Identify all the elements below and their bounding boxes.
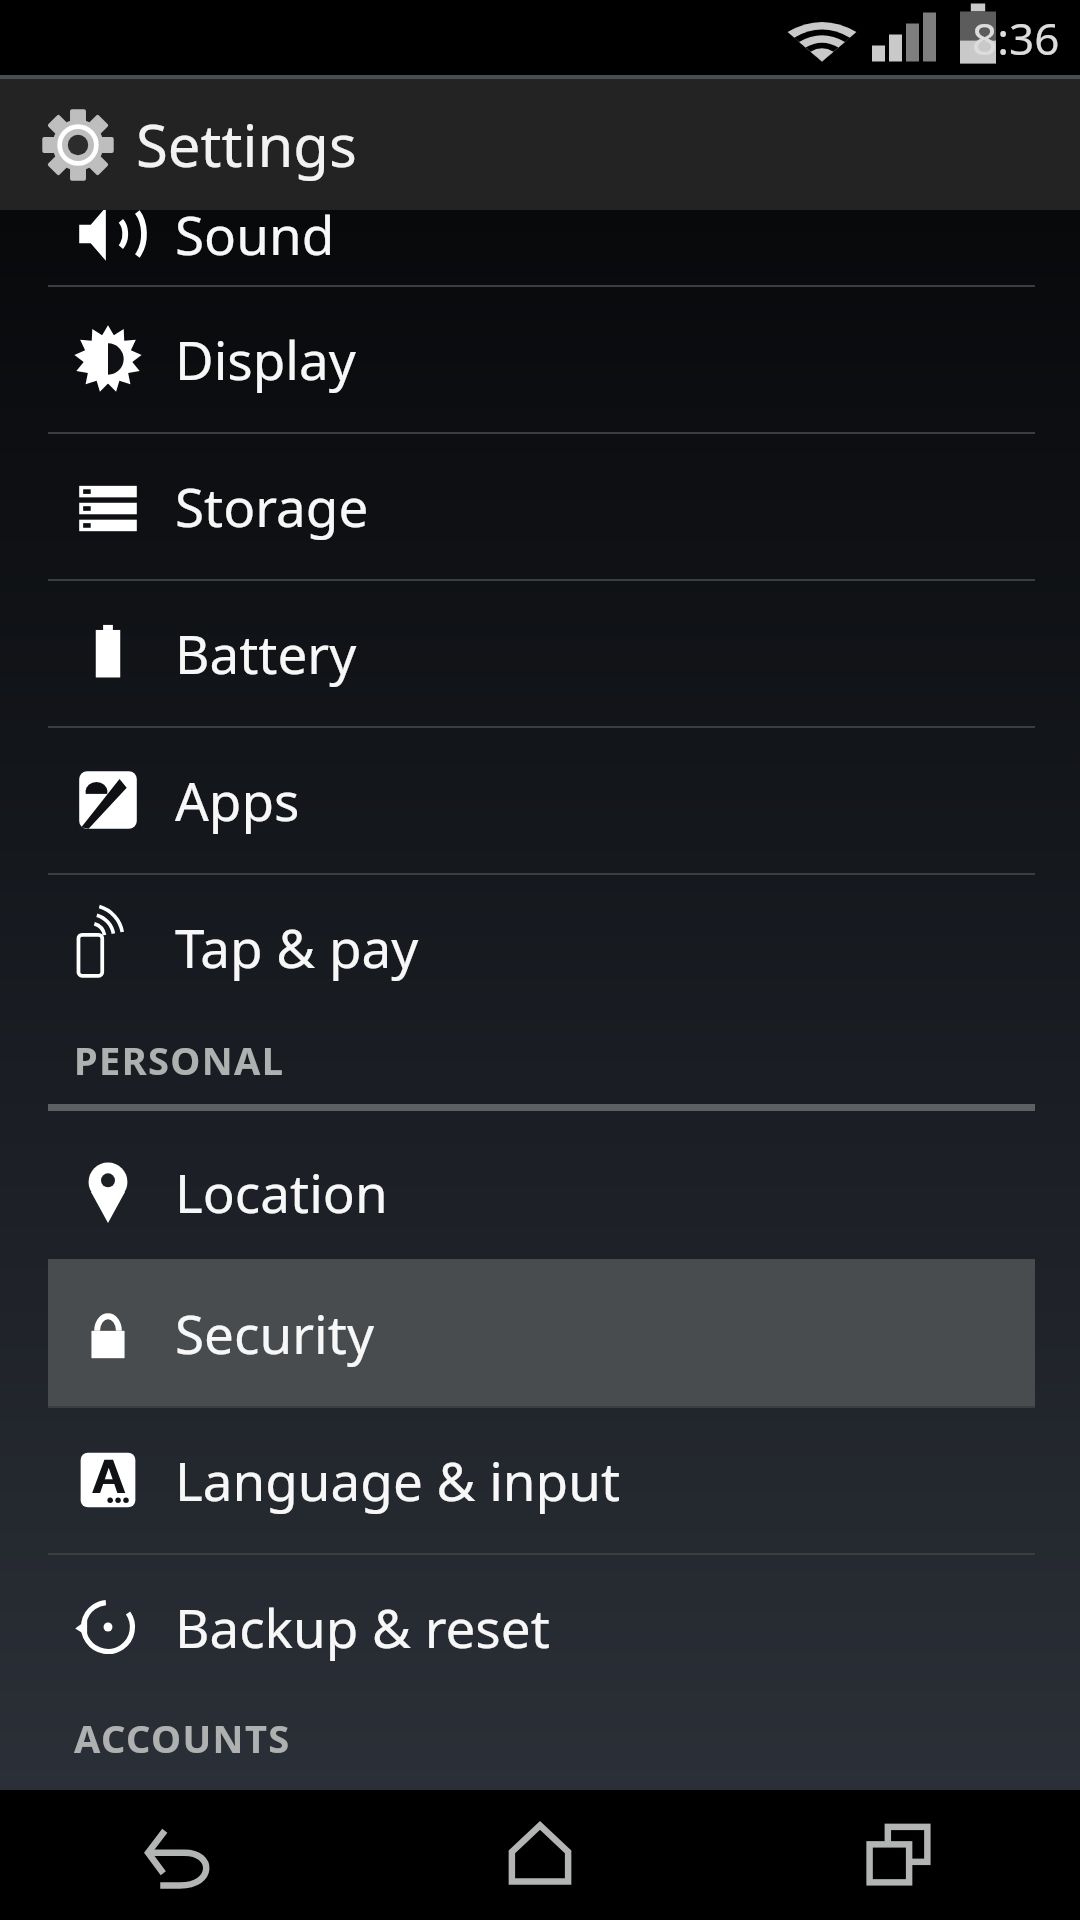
- staticText: Settings: [136, 105, 357, 184]
- button[interactable]: Tap & pay: [0, 873, 1080, 1020]
- staticText: ACCOUNTS: [74, 1712, 291, 1764]
- staticText: Sound: [175, 198, 335, 270]
- button[interactable]: Backup & reset: [0, 1553, 1080, 1700]
- staticText: Security: [175, 1297, 374, 1369]
- staticText: Battery: [175, 617, 357, 689]
- staticText: Apps: [175, 764, 300, 836]
- staticText: Location: [175, 1156, 388, 1228]
- button[interactable]: Storage: [0, 432, 1080, 579]
- staticText: Backup & reset: [175, 1591, 550, 1663]
- button[interactable]: Location: [0, 1118, 1080, 1265]
- button[interactable]: Language & input: [0, 1406, 1080, 1553]
- button[interactable]: Display: [0, 285, 1080, 432]
- button[interactable]: Apps: [0, 726, 1080, 873]
- staticText: Storage: [175, 470, 369, 542]
- button[interactable]: Security: [48, 1259, 1035, 1406]
- staticText: PERSONAL: [74, 1034, 285, 1086]
- staticText: Display: [175, 323, 356, 395]
- button[interactable]: Home: [360, 1790, 720, 1920]
- button[interactable]: Back: [0, 1790, 360, 1920]
- button[interactable]: Battery: [0, 579, 1080, 726]
- button[interactable]: Sound: [0, 186, 1080, 282]
- staticText: Language & input: [175, 1444, 621, 1516]
- staticText: 8:36: [972, 8, 1060, 68]
- button[interactable]: Settings: [0, 79, 1080, 210]
- staticText: Tap & pay: [175, 911, 419, 983]
- button[interactable]: Recent apps: [720, 1790, 1080, 1920]
